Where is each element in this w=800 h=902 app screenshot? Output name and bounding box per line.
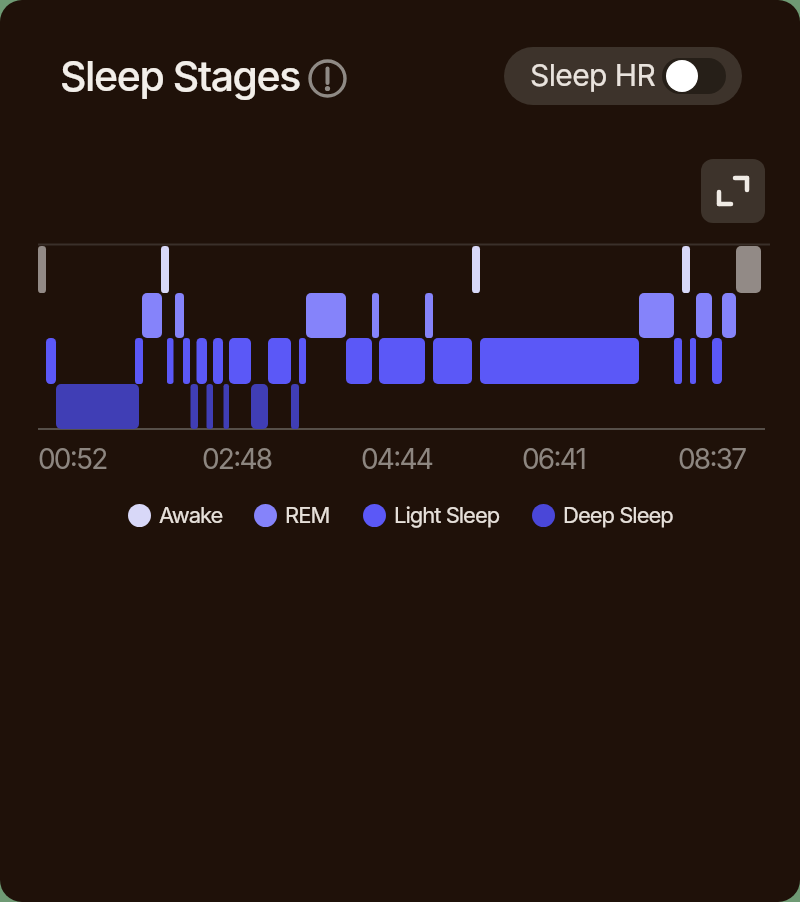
button[interactable]: Sleep HR bbox=[504, 47, 742, 105]
staticText: 02:48 bbox=[202, 442, 272, 476]
staticText: 06:41 bbox=[522, 442, 586, 476]
staticText: Light Sleep bbox=[394, 502, 500, 529]
button[interactable] bbox=[701, 159, 765, 223]
staticText: 04:44 bbox=[361, 442, 432, 476]
button[interactable] bbox=[308, 59, 347, 98]
staticText: Deep Sleep bbox=[563, 502, 673, 529]
staticText: 00:52 bbox=[38, 442, 107, 476]
staticText: Sleep HR bbox=[530, 57, 656, 93]
staticText: Sleep Stages bbox=[60, 51, 300, 101]
staticText: Awake bbox=[159, 502, 223, 529]
staticText: REM bbox=[285, 502, 330, 529]
staticText: 08:37 bbox=[678, 442, 746, 476]
button[interactable]: Sleep Stages bbox=[60, 51, 300, 101]
